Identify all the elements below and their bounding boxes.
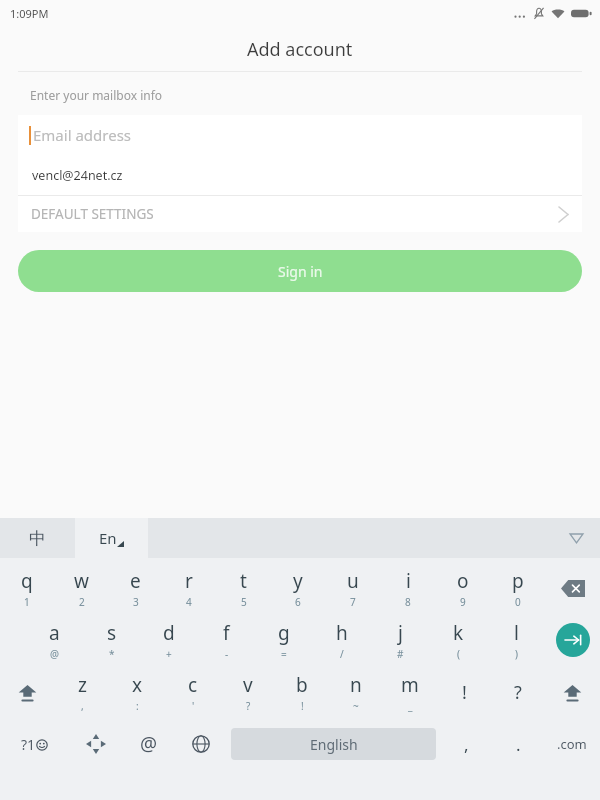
staticText: r [185, 568, 193, 594]
staticText: a [49, 620, 60, 646]
button[interactable]: Email address [18, 115, 582, 155]
button[interactable]: l [487, 614, 545, 666]
staticText: 7 [350, 595, 356, 609]
staticText: vencl@24net.cz [32, 167, 123, 184]
staticText: : [136, 699, 139, 713]
staticText: 3 [133, 595, 139, 609]
button[interactable]: b [275, 666, 329, 718]
staticText: u [347, 568, 359, 594]
staticText: Email address [33, 125, 132, 145]
staticText: ( [457, 647, 460, 661]
staticText: DEFAULT SETTINGS [31, 205, 154, 223]
button[interactable]: s [83, 614, 140, 666]
staticText: 8 [405, 595, 411, 609]
staticText: ) [515, 647, 518, 661]
staticText: l [514, 620, 519, 646]
button[interactable]: q [0, 562, 54, 614]
button[interactable]: Move cursor [68, 718, 123, 770]
button[interactable]: h [313, 614, 371, 666]
staticText: English [310, 735, 358, 754]
button[interactable]: . [492, 718, 544, 770]
staticText: . [516, 733, 521, 756]
button[interactable]: .com [544, 718, 600, 770]
button[interactable]: r [162, 562, 216, 614]
button[interactable]: English [231, 728, 436, 760]
staticText: s [107, 620, 117, 646]
button[interactable]: vencl@24net.cz [18, 155, 582, 195]
staticText: ? [514, 680, 522, 705]
staticText: - [225, 647, 229, 661]
button[interactable]: y [270, 562, 325, 614]
staticText: h [336, 620, 348, 646]
staticText: b [296, 672, 308, 698]
staticText: 1:09PM [10, 6, 49, 21]
button[interactable]: e [108, 562, 162, 614]
staticText: @ [50, 647, 59, 661]
button[interactable]: m [383, 666, 437, 718]
button[interactable]: Enter [545, 614, 600, 666]
staticText: c [188, 672, 198, 698]
staticText: En [99, 528, 117, 548]
button[interactable]: w [54, 562, 108, 614]
button[interactable]: DEFAULT SETTINGS [18, 196, 582, 232]
button[interactable]: , [440, 718, 492, 770]
staticText: y [293, 568, 303, 594]
staticText: p [512, 568, 524, 594]
button[interactable]: k [429, 614, 487, 666]
staticText: n [350, 672, 362, 698]
button[interactable]: @ [123, 718, 175, 770]
staticText: 中 [29, 528, 46, 549]
button[interactable]: Hide keyboard [568, 530, 584, 546]
button[interactable]: p [490, 562, 545, 614]
staticText: Sign in [278, 262, 323, 281]
button[interactable]: d [140, 614, 197, 666]
staticText: w [74, 568, 89, 594]
staticText: = [281, 647, 287, 661]
button[interactable]: Sign in [18, 250, 582, 292]
button[interactable]: i [380, 562, 435, 614]
staticText: , [464, 733, 469, 756]
button[interactable]: c [165, 666, 220, 718]
button[interactable]: o [435, 562, 490, 614]
button[interactable]: En [75, 518, 148, 558]
button[interactable]: Backspace [545, 562, 600, 614]
staticText: 2 [79, 595, 85, 609]
staticText: d [163, 620, 175, 646]
staticText: 9 [460, 595, 466, 609]
button[interactable]: a [26, 614, 83, 666]
button[interactable]: ? [491, 666, 545, 718]
staticText: 5 [241, 595, 247, 609]
staticText: / [340, 647, 344, 661]
staticText: i [406, 568, 411, 594]
staticText: _ [408, 699, 413, 713]
staticText: f [223, 620, 230, 646]
staticText: x [132, 672, 143, 698]
button[interactable]: u [325, 562, 380, 614]
staticText: z [78, 672, 87, 698]
button[interactable]: ! [437, 666, 491, 718]
staticText: ' [192, 699, 195, 713]
staticText: g [278, 620, 290, 646]
staticText: ? [246, 699, 251, 713]
staticText: 6 [295, 595, 301, 609]
button[interactable]: n [329, 666, 383, 718]
button[interactable]: Shift [545, 666, 600, 718]
staticText: o [457, 568, 469, 594]
staticText: @ [140, 731, 158, 757]
button[interactable]: 中 [0, 518, 75, 558]
staticText: Enter your mailbox info [30, 87, 163, 103]
button[interactable]: Change language [175, 718, 227, 770]
button[interactable]: g [255, 614, 313, 666]
staticText: q [21, 568, 33, 594]
button[interactable]: x [110, 666, 165, 718]
staticText: # [397, 647, 404, 661]
button[interactable]: t [216, 562, 270, 614]
staticText: 0 [515, 595, 521, 609]
button[interactable]: Symbols and emoji [0, 718, 68, 770]
button[interactable]: v [220, 666, 275, 718]
button[interactable]: f [197, 614, 255, 666]
button[interactable]: z [55, 666, 110, 718]
button[interactable]: j [371, 614, 429, 666]
button[interactable]: Shift [0, 666, 55, 718]
staticText: 1 [24, 595, 30, 609]
